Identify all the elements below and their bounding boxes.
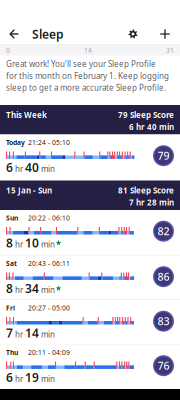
button[interactable]: Sat [0,255,180,299]
staticText: Thu [6,348,18,357]
staticText: 86 [157,270,169,284]
button[interactable]: Settings [123,24,143,44]
staticText: Sun [6,214,18,222]
staticText: 21:24 - 05:10 [28,138,70,147]
staticText: min [39,329,55,340]
staticText: 15 Jan - Sun [6,185,52,196]
staticText: min [39,239,55,250]
staticText: hr [13,164,25,174]
staticText: Great work! You'll see your Sleep Profil… [6,59,156,69]
staticText: 6 [6,369,13,385]
staticText: min [39,164,55,174]
staticText: 81 Sleep Score [118,185,174,196]
staticText: 8 [6,235,13,251]
staticText: 40 [25,159,39,175]
staticText: 20:11 - 04:09 [28,348,70,357]
staticText: 20:27 - 05:00 [28,304,70,312]
staticText: 76 [157,359,169,373]
staticText: 10 [25,235,39,251]
staticText: 20:22 - 06:10 [28,214,70,222]
staticText: 6 [6,159,13,175]
staticText: 19 [25,369,39,385]
button[interactable]: Back [4,24,24,44]
staticText: hr [13,329,25,340]
button[interactable]: Sun [0,210,180,255]
staticText: 0 [6,46,10,55]
staticText: 79 Sleep Score [118,109,174,120]
staticText: Sleep [32,26,64,42]
button[interactable]: Today [0,134,180,180]
staticText: 14 [25,325,39,341]
staticText: 79 [157,149,169,163]
staticText: Today [6,138,25,147]
staticText: This Week [6,109,47,120]
staticText: hr [13,239,25,250]
staticText: hr [13,285,25,295]
staticText: Fri [6,304,15,312]
staticText: Sat [6,259,17,268]
staticText: 34 [25,280,39,296]
staticText: 6 hr 40 min [129,122,174,132]
button[interactable]: Fri [0,300,180,344]
staticText: 83 [157,314,169,328]
button[interactable]: Add sleep entry [155,24,175,44]
staticText: min [39,285,55,295]
button[interactable]: Thu [0,344,180,388]
staticText: 82 [157,224,169,238]
staticText: 7 hr 28 min [129,197,174,208]
staticText: 7 [6,325,13,341]
staticText: min [39,374,55,384]
staticText: sleep to get a more accurate Sleep Profi… [6,82,166,93]
staticText: 31 [166,46,174,55]
staticText: for this month on February 1. Keep loggi… [6,70,169,81]
staticText: hr [13,374,25,384]
staticText: 20:43 - 06:11 [28,259,70,268]
staticText: 14 [84,46,92,55]
staticText: 8 [6,280,13,296]
